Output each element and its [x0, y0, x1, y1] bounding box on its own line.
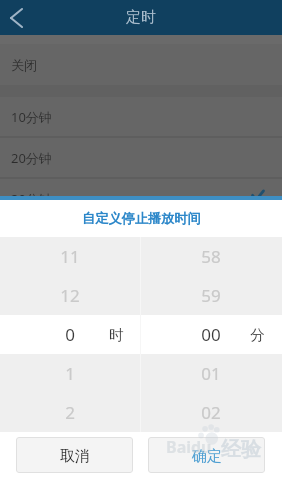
- button[interactable]: 59: [141, 276, 282, 315]
- staticText: 关闭: [11, 57, 37, 73]
- button[interactable]: Back: [0, 0, 33, 35]
- staticText: 01: [201, 362, 221, 385]
- staticText: 30分钟: [11, 190, 52, 208]
- staticText: 经验: [221, 437, 261, 462]
- button[interactable]: 11: [0, 237, 140, 276]
- staticText: 定时: [126, 8, 156, 27]
- button[interactable]: 关闭: [0, 44, 282, 85]
- button[interactable]: 00: [141, 315, 282, 354]
- staticText: 2: [65, 401, 75, 424]
- button[interactable]: 取消: [16, 437, 133, 473]
- staticText: 1: [65, 362, 75, 385]
- staticText: 0: [65, 323, 75, 346]
- staticText: Baidu: [166, 436, 212, 458]
- staticText: 59: [201, 284, 221, 307]
- staticText: 10分钟: [11, 108, 52, 126]
- staticText: 自定义停止播放时间: [82, 210, 201, 227]
- staticText: 12: [60, 284, 80, 307]
- staticText: 11: [60, 245, 80, 268]
- button[interactable]: 01: [141, 354, 282, 393]
- button[interactable]: 30分钟: [0, 179, 282, 218]
- staticText: 确定: [192, 447, 222, 466]
- button[interactable]: 02: [141, 393, 282, 432]
- staticText: 58: [201, 245, 221, 268]
- button[interactable]: 0: [0, 315, 140, 354]
- button[interactable]: 20分钟: [0, 138, 282, 177]
- staticText: 分: [250, 326, 265, 344]
- staticText: 02: [201, 401, 221, 424]
- staticText: 取消: [60, 447, 90, 466]
- button[interactable]: 58: [141, 237, 282, 276]
- staticText: 20分钟: [11, 149, 52, 167]
- staticText: 00: [201, 323, 221, 346]
- staticText: 60分钟: [11, 231, 52, 249]
- staticText: 时: [109, 326, 124, 344]
- button[interactable]: 60分钟: [0, 220, 282, 259]
- button[interactable]: 确定: [148, 437, 265, 473]
- button[interactable]: 12: [0, 276, 140, 315]
- button[interactable]: 10分钟: [0, 97, 282, 136]
